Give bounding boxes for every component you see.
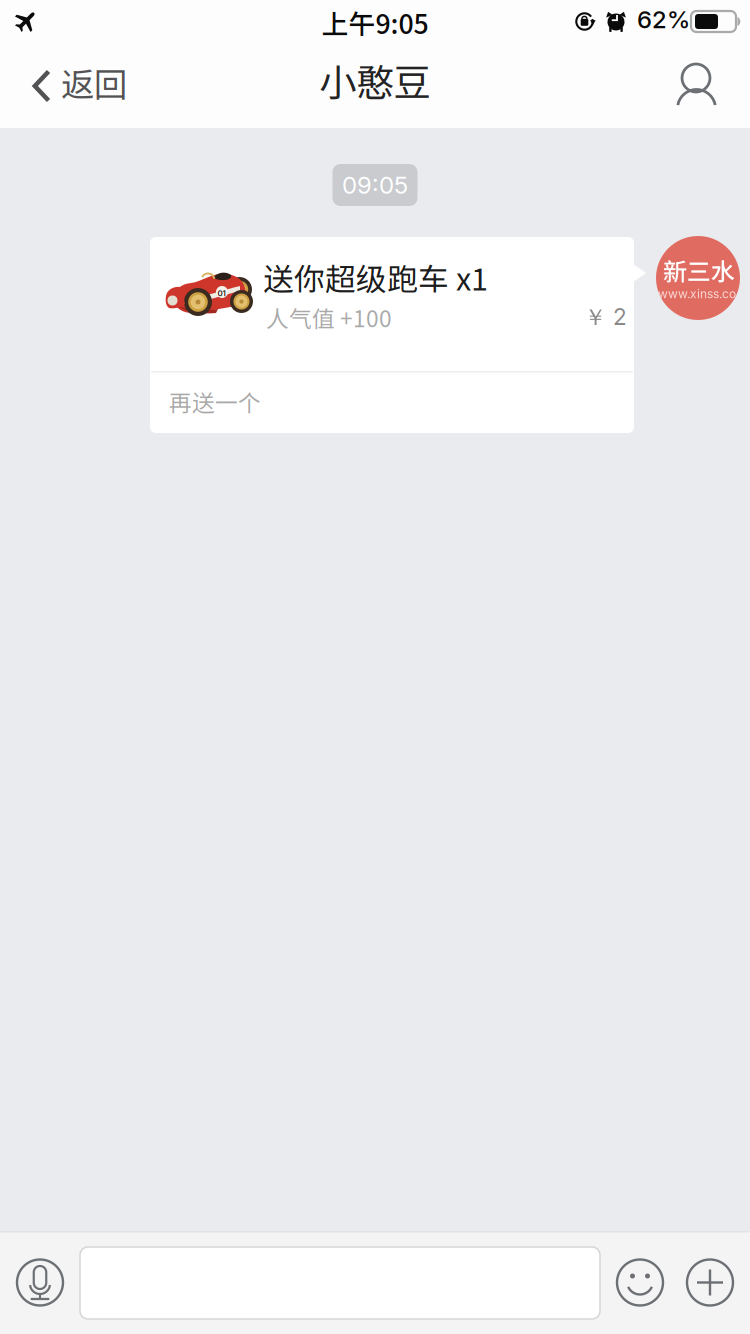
staticText: 01	[217, 288, 225, 298]
button[interactable]: Message input	[80, 1247, 600, 1319]
staticText: www.xinss.com	[658, 287, 746, 301]
staticText: 人气值 +100	[266, 301, 392, 334]
button[interactable]: 再送一个	[150, 373, 634, 433]
staticText: 上午9:05	[321, 3, 428, 42]
button[interactable]: Emoji	[604, 1231, 676, 1334]
button[interactable]: 返回	[19, 44, 147, 128]
button[interactable]: More	[674, 1231, 746, 1334]
staticText: 新三水	[663, 253, 735, 287]
staticText: 62%	[637, 5, 690, 34]
staticText: 送你超级跑车 x1	[263, 255, 488, 299]
button[interactable]: Profile	[655, 44, 739, 128]
staticText: 09:05	[342, 170, 408, 199]
staticText: 返回	[61, 58, 127, 106]
staticText: 再送一个	[169, 385, 261, 418]
button[interactable]: Voice message	[4, 1231, 76, 1334]
staticText: 小憨豆	[319, 53, 430, 107]
button[interactable]: 01	[150, 237, 634, 371]
staticText: ￥ 2	[584, 303, 627, 332]
